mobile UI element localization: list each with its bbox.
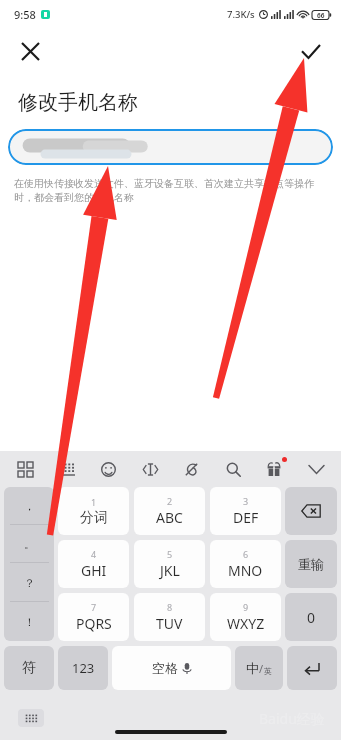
button[interactable]: 6	[210, 540, 281, 588]
staticText: 2	[167, 495, 173, 507]
staticText: 在使用快传接收发送文件、蓝牙设备互联、首次建立共享热点等操作时，都会看到您的手机…	[14, 177, 327, 204]
button[interactable]: 1	[58, 487, 129, 535]
button[interactable]: Close	[12, 33, 48, 69]
staticText: 修改手机名称	[18, 90, 138, 115]
staticText: 0	[307, 608, 316, 627]
button[interactable]: ！	[4, 602, 54, 641]
staticText: 6	[243, 548, 249, 560]
button[interactable]: ？	[4, 563, 54, 602]
staticText: ABC	[156, 508, 183, 527]
button[interactable]: 4	[58, 540, 129, 588]
staticText: WXYZ	[227, 614, 265, 633]
button[interactable]: 空格	[112, 646, 231, 690]
button[interactable]	[8, 129, 333, 165]
staticText: 分词	[80, 509, 108, 527]
button[interactable]: 0	[285, 593, 337, 641]
button[interactable]: 。	[4, 525, 54, 563]
staticText: 。	[24, 537, 35, 551]
staticText: 66	[317, 11, 325, 20]
button[interactable]: Search	[220, 456, 246, 482]
button[interactable]: ，	[4, 487, 54, 525]
button[interactable]: Cursor	[137, 456, 163, 482]
staticText: JKL	[160, 561, 180, 580]
button[interactable]: 中	[235, 646, 283, 690]
staticText: 英	[264, 666, 272, 676]
staticText: 7	[91, 601, 97, 613]
staticText: 9:58	[14, 7, 36, 22]
button[interactable]: Collapse	[303, 456, 329, 482]
staticText: 8	[167, 601, 173, 613]
staticText: 重输	[298, 556, 324, 572]
button[interactable]: 123	[58, 646, 108, 690]
button[interactable]: Hide keyboard	[18, 709, 44, 727]
staticText: 符	[22, 659, 36, 677]
staticText: ，	[24, 499, 35, 513]
staticText: ？	[24, 576, 35, 590]
button[interactable]: Emoji	[95, 456, 121, 482]
staticText: 中	[246, 660, 259, 676]
staticText: TUV	[156, 614, 183, 633]
button[interactable]: Keyboard	[54, 456, 80, 482]
staticText: 4	[91, 548, 97, 560]
staticText: GHI	[81, 561, 107, 580]
button[interactable]: 7	[58, 593, 129, 641]
staticText: DEF	[233, 508, 259, 527]
staticText: 9	[243, 601, 249, 613]
staticText: ！	[24, 615, 35, 629]
staticText: /	[259, 661, 264, 676]
staticText: 空格	[152, 660, 178, 676]
button[interactable]: 重输	[285, 540, 337, 588]
button[interactable]: 3	[210, 487, 281, 535]
button[interactable]: 5	[134, 540, 205, 588]
button[interactable]: Enter	[287, 646, 337, 690]
staticText: 123	[72, 659, 95, 677]
button[interactable]: 9	[210, 593, 281, 641]
button[interactable]: Confirm	[293, 33, 329, 69]
staticText: MNO	[228, 561, 263, 580]
button[interactable]: Attach	[178, 456, 204, 482]
button[interactable]: Apps	[12, 456, 38, 482]
button[interactable]: 2	[134, 487, 205, 535]
button[interactable]: Backspace	[285, 487, 337, 535]
staticText: 5	[167, 548, 173, 560]
staticText: 7.3K/s	[227, 8, 255, 21]
button[interactable]: 8	[134, 593, 205, 641]
staticText: PQRS	[76, 614, 112, 633]
staticText: 3	[243, 495, 249, 507]
button[interactable]: 符	[4, 646, 54, 690]
button[interactable]: Gifts	[261, 456, 287, 482]
staticText: 1	[91, 496, 97, 508]
